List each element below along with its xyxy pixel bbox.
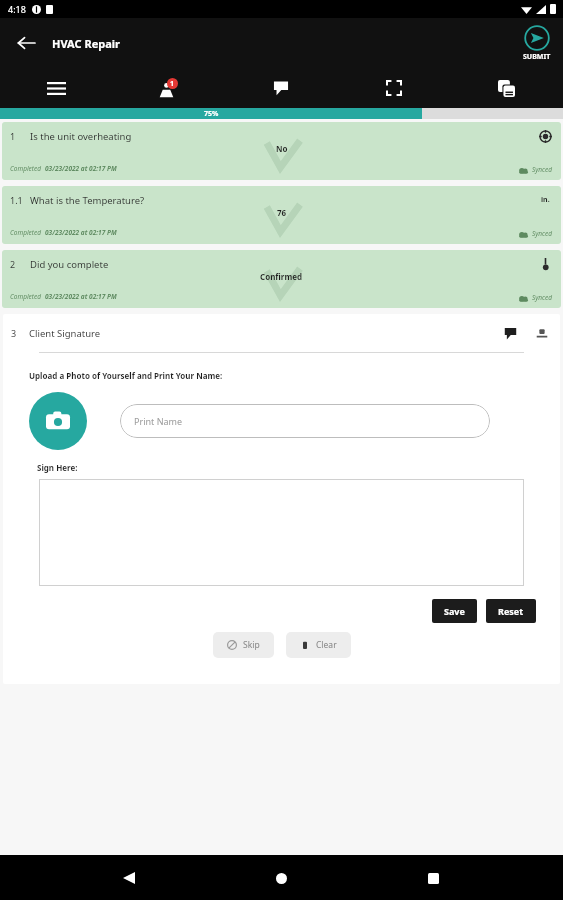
- staticText: 4:18: [8, 3, 26, 15]
- staticText: Completed: [10, 292, 42, 301]
- button[interactable]: Take photo: [29, 392, 87, 450]
- button[interactable]: Notes: [500, 323, 520, 343]
- button[interactable]: Notes: [224, 68, 337, 108]
- button[interactable]: Back: [107, 856, 151, 900]
- staticText: 03/23/2022 at 02:17 PM: [45, 164, 117, 173]
- staticText: Sign Here:: [37, 462, 78, 473]
- staticText: Completed: [10, 164, 42, 173]
- staticText: 2: [10, 258, 16, 270]
- button[interactable]: Reset: [486, 599, 536, 623]
- button[interactable]: Home: [259, 856, 303, 900]
- staticText: Print Name: [134, 415, 183, 427]
- staticText: Did you complete: [30, 258, 109, 271]
- staticText: Synced: [532, 165, 553, 174]
- button[interactable]: 2: [2, 250, 561, 308]
- button[interactable]: Skip: [213, 632, 274, 658]
- button[interactable]: Question options: [535, 126, 555, 146]
- button[interactable]: Copy: [450, 68, 563, 108]
- staticText: Confirmed: [260, 271, 303, 282]
- staticText: What is the Temperature?: [30, 194, 145, 207]
- button[interactable]: Recents: [411, 856, 455, 900]
- staticText: 75%: [204, 109, 219, 119]
- staticText: 1: [170, 79, 175, 89]
- staticText: Reset: [498, 605, 524, 617]
- staticText: HVAC Repair: [52, 36, 120, 51]
- button[interactable]: Save: [432, 599, 477, 623]
- staticText: Clear: [316, 639, 337, 651]
- staticText: in.: [541, 195, 550, 205]
- button[interactable]: 1.1: [2, 186, 561, 244]
- button[interactable]: Signature tool: [532, 323, 552, 343]
- button[interactable]: Menu: [0, 68, 112, 108]
- button[interactable]: Clear: [286, 632, 351, 658]
- staticText: Completed: [10, 228, 42, 237]
- staticText: 76: [277, 207, 287, 218]
- staticText: Synced: [532, 293, 553, 302]
- button[interactable]: Signature area: [39, 479, 524, 586]
- staticText: Synced: [532, 229, 553, 238]
- staticText: No: [276, 143, 288, 154]
- staticText: 03/23/2022 at 02:17 PM: [45, 292, 117, 301]
- button[interactable]: SUBMIT: [521, 25, 553, 62]
- button[interactable]: Question options: [535, 190, 555, 210]
- staticText: 3: [11, 327, 17, 339]
- staticText: Save: [444, 605, 465, 617]
- staticText: Skip: [243, 639, 260, 651]
- button[interactable]: 1: [2, 122, 561, 180]
- button[interactable]: Question options: [535, 254, 555, 274]
- staticText: 1: [10, 130, 16, 142]
- staticText: Client Signature: [29, 327, 101, 340]
- button[interactable]: Fullscreen: [337, 68, 450, 108]
- staticText: SUBMIT: [523, 52, 551, 62]
- button[interactable]: Team: [112, 68, 224, 108]
- staticText: Upload a Photo of Yourself and Print You…: [29, 370, 223, 381]
- staticText: Is the unit overheating: [30, 130, 132, 143]
- button[interactable]: Print Name: [120, 404, 490, 438]
- staticText: 03/23/2022 at 02:17 PM: [45, 228, 117, 237]
- button[interactable]: Back: [8, 25, 44, 61]
- staticText: 1.1: [10, 194, 23, 206]
